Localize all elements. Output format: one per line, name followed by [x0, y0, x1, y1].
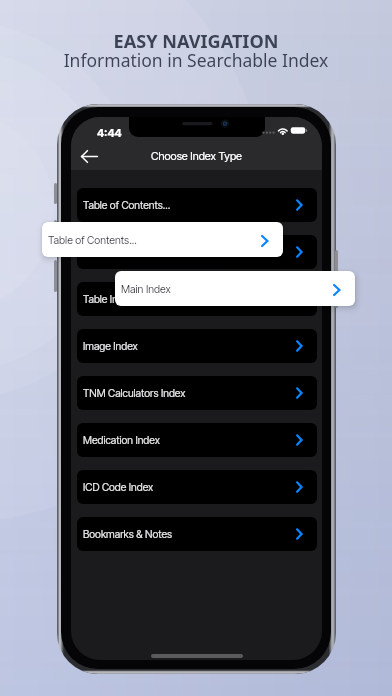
- button[interactable]: Bookmarks & Notes: [77, 517, 317, 551]
- staticText: Main Index: [121, 283, 333, 296]
- staticText: TNM Calculators Index: [83, 387, 296, 400]
- staticText: Table of Contents...: [83, 246, 296, 259]
- button[interactable]: Image Index: [77, 329, 317, 363]
- staticText: Table of Contents...: [83, 199, 296, 212]
- staticText: ICD Code Index: [83, 481, 296, 494]
- staticText: 4:44: [97, 126, 122, 139]
- staticText: Bookmarks & Notes: [83, 528, 296, 541]
- button[interactable]: Table of Contents...: [77, 188, 317, 222]
- staticText: Choose Index Type: [71, 149, 322, 162]
- staticText: Table of Contents...: [48, 234, 261, 247]
- staticText: Table Index: [83, 293, 296, 306]
- button[interactable]: Table of Contents...: [42, 222, 283, 257]
- staticText: Information in Searchable Index: [0, 48, 392, 72]
- button[interactable]: Table of Contents...: [77, 235, 317, 269]
- button[interactable]: Back: [78, 145, 101, 168]
- staticText: Medication Index: [83, 434, 296, 447]
- staticText: EASY NAVIGATION: [0, 29, 392, 54]
- button[interactable]: ICD Code Index: [77, 470, 317, 504]
- button[interactable]: TNM Calculators Index: [77, 376, 317, 410]
- staticText: Image Index: [83, 340, 296, 353]
- button[interactable]: Medication Index: [77, 423, 317, 457]
- button[interactable]: Table Index: [77, 282, 317, 316]
- button[interactable]: Main Index: [115, 271, 355, 306]
